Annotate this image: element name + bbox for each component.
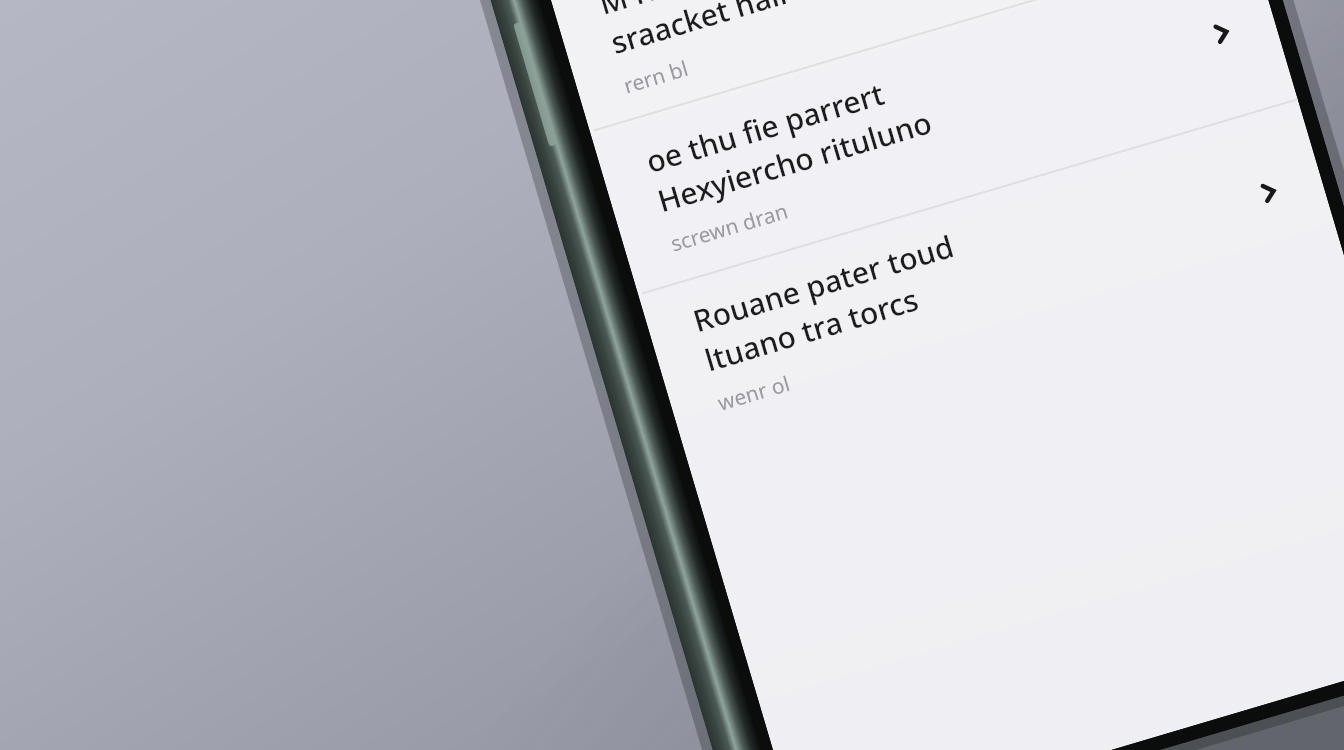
staticText: screwn dran [667,196,791,259]
button[interactable]: Rouane pater toud [638,100,1343,449]
staticText: wenr ol [714,369,793,418]
staticText: M rlouale bav [594,0,794,24]
button[interactable]: M rlouale bav [545,0,1249,131]
staticText: rern bl [620,54,692,100]
staticText: Rouane pater toud [688,225,959,341]
staticText: oe thu fie parrert [641,73,888,182]
button[interactable]: oe thu fie parrert [590,0,1297,294]
staticText: ltuano tra torcs [700,278,923,380]
staticText: Hexyiercho rituluno [653,101,937,221]
other: Open oe thu fie parrert [1197,8,1247,58]
staticText: sraacket hall fault [606,0,863,63]
other: Open Rouane pater toud [1244,167,1294,217]
